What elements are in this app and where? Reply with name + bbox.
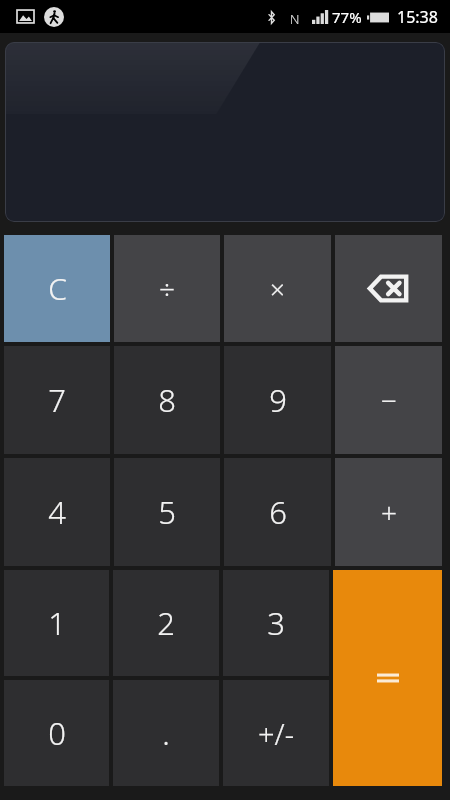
staticText: 0 — [48, 712, 66, 754]
staticText: 77% — [332, 7, 362, 27]
staticText: +/- — [258, 714, 294, 753]
staticText: − — [381, 381, 397, 419]
button[interactable]: 2 — [113, 570, 219, 676]
button[interactable]: Backspace — [335, 235, 442, 342]
staticText: 6 — [269, 491, 287, 533]
staticText: 9 — [269, 379, 287, 421]
button[interactable]: 4 — [4, 458, 110, 566]
staticText: 4 — [48, 491, 66, 533]
staticText: C — [48, 268, 67, 309]
button[interactable]: 8 — [114, 346, 220, 454]
staticText: 7 — [48, 379, 66, 421]
staticText: ÷ — [159, 270, 175, 308]
button[interactable]: + — [335, 458, 442, 566]
staticText: . — [162, 712, 170, 754]
button[interactable]: 7 — [4, 346, 110, 454]
button[interactable]: 6 — [224, 458, 331, 566]
button[interactable]: ÷ — [114, 235, 220, 342]
button[interactable]: C — [4, 235, 110, 342]
button[interactable]: . — [113, 680, 219, 786]
staticText: × — [270, 271, 285, 306]
staticText: 5 — [158, 491, 176, 533]
button[interactable]: 5 — [114, 458, 220, 566]
button[interactable]: × — [224, 235, 331, 342]
button[interactable]: 1 — [4, 570, 109, 676]
button[interactable]: +/- — [223, 680, 329, 786]
staticText: 15:38 — [397, 6, 438, 28]
button[interactable]: − — [335, 346, 442, 454]
staticText: + — [381, 493, 397, 531]
staticText: 3 — [267, 602, 285, 644]
button[interactable]: Equals — [333, 570, 442, 786]
button[interactable]: 3 — [223, 570, 329, 676]
button[interactable]: 9 — [224, 346, 331, 454]
staticText: 8 — [158, 379, 176, 421]
staticText: 1 — [48, 602, 66, 644]
staticText: 2 — [157, 602, 175, 644]
button[interactable]: 0 — [4, 680, 109, 786]
staticText: N — [290, 10, 300, 24]
